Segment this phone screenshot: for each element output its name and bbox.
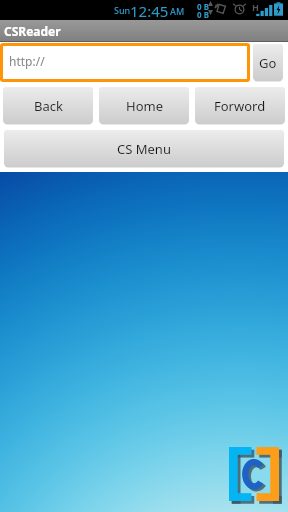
other: Battery charging [274, 2, 283, 16]
staticText: Sun [114, 4, 131, 16]
other: Alarm set [233, 2, 246, 15]
button[interactable]: Back [3, 87, 93, 124]
button[interactable]: CS Menu [4, 130, 284, 167]
staticText: Forword [214, 97, 266, 115]
other: Vibrate mode [214, 2, 227, 15]
staticText: H [252, 1, 259, 13]
other: Data usage [197, 1, 213, 19]
staticText: Home [126, 97, 163, 115]
staticText: 0 B [197, 1, 209, 12]
staticText: CSReader [4, 23, 61, 39]
staticText: http:// [9, 53, 45, 69]
other: Signal strength [252, 2, 273, 18]
other: CSReader logo [229, 447, 279, 501]
button[interactable]: Go [253, 44, 283, 81]
staticText: Go [259, 54, 277, 72]
button[interactable]: Forword [195, 87, 285, 124]
staticText: Back [34, 97, 63, 115]
button[interactable]: Home [99, 87, 189, 124]
staticText: 12:45 [130, 1, 169, 21]
staticText: AM [170, 5, 185, 17]
button[interactable]: http:// [3, 46, 247, 79]
staticText: 0 B [197, 9, 209, 20]
staticText: CS Menu [117, 140, 171, 158]
